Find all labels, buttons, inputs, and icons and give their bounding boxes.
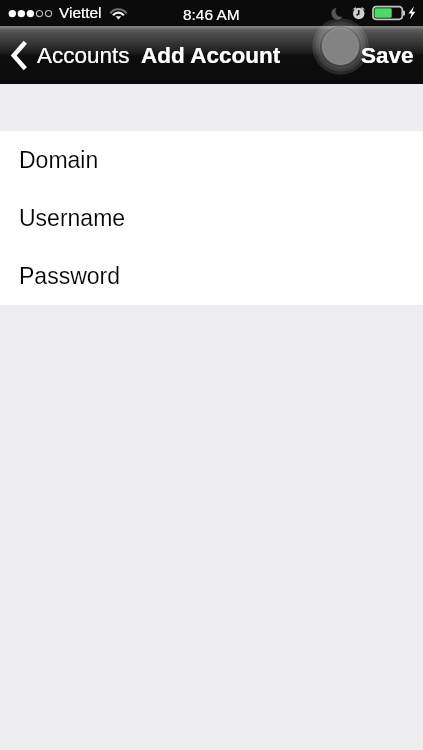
button[interactable]: Domain [0, 131, 423, 189]
staticText: 8:46 AM [183, 6, 240, 23]
button[interactable]: Username [0, 189, 423, 247]
button[interactable]: Save [351, 35, 423, 76]
staticText: Viettel [59, 4, 102, 21]
button[interactable]: Accounts [0, 36, 138, 75]
staticText: Domain [19, 147, 99, 173]
staticText: Username [19, 205, 126, 231]
staticText: Save [361, 43, 414, 68]
button[interactable]: AssistiveTouch [312, 18, 369, 75]
staticText: Add Account [141, 43, 281, 68]
staticText: Accounts [37, 43, 130, 68]
button[interactable]: Password [0, 247, 423, 305]
staticText: Password [19, 263, 120, 289]
